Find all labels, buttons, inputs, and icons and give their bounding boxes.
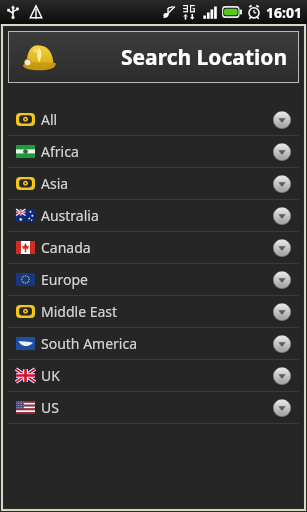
button[interactable]: Middle East	[8, 296, 299, 327]
button[interactable]: Asia	[8, 168, 299, 199]
button[interactable]: Expand UK	[273, 367, 291, 385]
staticText: Africa	[41, 142, 79, 161]
staticText: Australia	[41, 206, 99, 225]
staticText: UK	[41, 366, 60, 385]
button[interactable]: Expand Canada	[273, 239, 291, 257]
button[interactable]: Europe	[8, 264, 299, 295]
button[interactable]: Expand Europe	[273, 271, 291, 289]
staticText: Canada	[41, 238, 91, 257]
button[interactable]: US	[8, 392, 299, 423]
staticText: All	[41, 110, 58, 129]
staticText: South America	[41, 334, 138, 353]
staticText: Asia	[41, 174, 69, 193]
button[interactable]: South America	[8, 328, 299, 359]
button[interactable]: Africa	[8, 136, 299, 167]
other: App icon	[19, 37, 59, 77]
staticText: Middle East	[41, 302, 118, 321]
button[interactable]: Australia	[8, 200, 299, 231]
button[interactable]: Expand Australia	[273, 207, 291, 225]
button[interactable]: Expand Middle East	[273, 303, 291, 321]
button[interactable]: UK	[8, 360, 299, 391]
button[interactable]: Expand US	[273, 399, 291, 417]
button[interactable]: Expand South America	[273, 335, 291, 353]
staticText: 16:01	[266, 3, 302, 22]
staticText: Europe	[41, 270, 88, 289]
button[interactable]: App icon	[9, 32, 298, 82]
button[interactable]: Expand Africa	[273, 143, 291, 161]
staticText: US	[41, 398, 59, 417]
button[interactable]: Expand All	[273, 111, 291, 129]
button[interactable]: Canada	[8, 232, 299, 263]
button[interactable]: Expand Asia	[273, 175, 291, 193]
staticText: Search Location	[121, 43, 288, 72]
button[interactable]: All	[8, 104, 299, 135]
